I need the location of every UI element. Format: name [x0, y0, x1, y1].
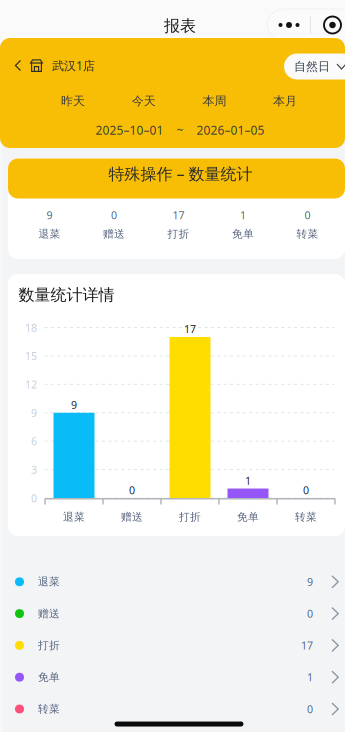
staticText: 0 [307, 702, 313, 716]
staticText: 17 [301, 638, 313, 652]
button[interactable]: 武汉1店 [5, 49, 104, 81]
staticText: 3 [31, 462, 37, 477]
button[interactable]: More [267, 9, 310, 41]
staticText: 本月 [273, 94, 297, 108]
staticText: 转菜 [296, 227, 318, 240]
staticText: 0 [129, 483, 135, 497]
staticText: 报表 [164, 16, 196, 36]
staticText: ~ [176, 122, 183, 138]
staticText: 赠送 [38, 607, 60, 620]
staticText: 0 [111, 208, 117, 222]
staticText: 打折 [38, 639, 60, 652]
staticText: 特殊操作 – 数量统计 [108, 163, 252, 184]
button[interactable]: 转菜 [0, 693, 345, 725]
staticText: 今天 [132, 94, 156, 108]
staticText: 9 [46, 208, 52, 222]
button[interactable]: 本周 [184, 89, 244, 113]
staticText: 1 [307, 670, 313, 684]
staticText: 转菜 [38, 702, 60, 715]
staticText: 2026–01–05 [196, 122, 264, 138]
button[interactable]: 昨天 [43, 89, 103, 113]
staticText: 17 [184, 322, 196, 336]
staticText: 赠送 [121, 510, 143, 523]
staticText: 9 [307, 575, 313, 589]
button[interactable]: 免单 [0, 661, 345, 693]
button[interactable]: 赠送 [0, 598, 345, 629]
staticText: 0 [304, 208, 310, 222]
staticText: 退菜 [38, 227, 60, 240]
staticText: 6 [31, 434, 37, 448]
staticText: 自然日 [294, 59, 330, 74]
button[interactable]: 退菜 [0, 566, 345, 598]
staticText: 转菜 [295, 510, 317, 523]
button[interactable]: 自然日 [284, 53, 345, 79]
staticText: 0 [31, 491, 37, 505]
staticText: 武汉1店 [52, 57, 95, 73]
staticText: 免单 [237, 510, 259, 523]
staticText: 12 [25, 377, 37, 391]
button[interactable]: Close mini program [310, 9, 345, 41]
staticText: 赠送 [103, 227, 125, 240]
staticText: 退菜 [63, 510, 85, 523]
staticText: 免单 [232, 227, 254, 240]
staticText: 2025–10–01 [95, 122, 163, 138]
staticText: 免单 [38, 671, 60, 684]
staticText: 打折 [179, 510, 201, 523]
staticText: 0 [303, 483, 309, 497]
button[interactable]: 打折 [0, 629, 345, 661]
staticText: 17 [172, 208, 184, 222]
staticText: 18 [25, 320, 37, 335]
staticText: 15 [25, 349, 37, 363]
staticText: 1 [245, 473, 251, 488]
staticText: 打折 [167, 227, 189, 240]
staticText: 0 [307, 606, 313, 621]
staticText: 本周 [202, 94, 226, 108]
staticText: 退菜 [38, 575, 60, 588]
staticText: 1 [240, 208, 246, 222]
staticText: 9 [71, 398, 77, 412]
staticText: 昨天 [61, 94, 85, 108]
button[interactable]: 今天 [114, 89, 174, 113]
button[interactable]: 本月 [255, 89, 315, 113]
staticText: 数量统计详情 [18, 285, 114, 305]
staticText: 9 [31, 406, 37, 420]
